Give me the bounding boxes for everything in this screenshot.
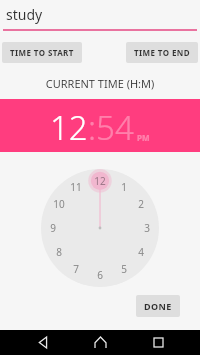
staticText: DONE — [144, 300, 172, 312]
button[interactable]: study — [0, 0, 200, 29]
button[interactable]: Recent apps — [143, 330, 173, 355]
button[interactable]: 6 — [91, 268, 109, 282]
button[interactable]: 10 — [50, 197, 68, 211]
staticText: 12 — [94, 174, 106, 188]
staticText: 4 — [138, 245, 144, 259]
button[interactable]: PM — [137, 132, 150, 143]
button[interactable]: TIME TO END — [126, 42, 198, 63]
staticText: 8 — [56, 245, 62, 259]
staticText: 11 — [70, 180, 82, 194]
button[interactable]: TIME TO START — [2, 42, 82, 63]
staticText: 9 — [50, 221, 56, 235]
staticText: 7 — [73, 262, 79, 276]
staticText: 3 — [144, 221, 150, 235]
button[interactable]: 3 — [138, 221, 156, 235]
button[interactable]: 11 — [67, 180, 85, 194]
button[interactable]: DONE — [136, 295, 180, 317]
staticText: 2 — [138, 197, 144, 211]
staticText: 5 — [121, 262, 127, 276]
staticText: TIME TO END — [134, 47, 190, 58]
button[interactable]: 5 — [115, 262, 133, 276]
staticText: CURRENT TIME (H:M) — [0, 76, 200, 91]
button[interactable]: Home — [85, 330, 115, 355]
button[interactable]: 4 — [132, 245, 150, 259]
button[interactable]: 9 — [44, 221, 62, 235]
button[interactable]: Back — [28, 330, 58, 355]
button[interactable]: 1 — [115, 180, 133, 194]
button[interactable]: 2 — [132, 197, 150, 211]
staticText: 10 — [53, 197, 65, 211]
staticText: study — [6, 5, 43, 24]
staticText: TIME TO START — [10, 47, 74, 58]
button[interactable]: 7 — [67, 262, 85, 276]
button[interactable]: :54 — [88, 105, 134, 150]
staticText: 6 — [97, 268, 103, 282]
staticText: 1 — [121, 180, 127, 194]
button[interactable]: 8 — [50, 245, 68, 259]
button[interactable]: 12 — [50, 105, 88, 150]
button[interactable]: 12 — [91, 174, 109, 188]
